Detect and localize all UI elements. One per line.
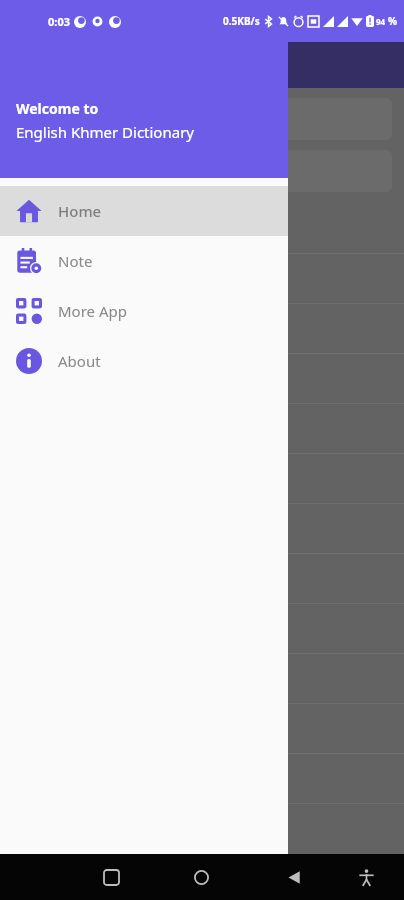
staticText: 0.5KB/s [223,14,260,28]
button[interactable]: About [0,336,288,386]
button[interactable]: Recents [93,859,129,895]
staticText: About [58,351,101,371]
button[interactable]: Home [0,186,288,236]
staticText: Note [58,251,93,271]
staticText: 94 [376,16,386,27]
staticText: English [26,109,78,129]
button[interactable]: Accessibility [348,859,384,895]
staticText: More App [58,301,127,321]
button[interactable]: Note [0,236,288,286]
staticText: Home [58,201,102,221]
staticText: Welcome to [16,99,99,118]
staticText: English Khmer Dictionary [16,122,194,142]
button[interactable]: Back [276,859,312,895]
staticText: % [388,14,398,28]
button[interactable]: More App [0,286,288,336]
staticText: 0:03 [48,14,70,29]
button[interactable]: Home [183,859,219,895]
